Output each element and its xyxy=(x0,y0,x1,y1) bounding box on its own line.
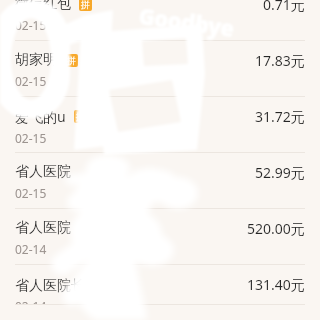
staticText: 02-15 xyxy=(15,185,47,201)
staticText: 省人医院长x xyxy=(15,275,93,294)
button[interactable]: 爱飞的u xyxy=(0,97,320,153)
staticText: 02-15 xyxy=(15,73,47,89)
staticText: 02-14 xyxy=(15,241,47,257)
button[interactable]: 省人医院 xyxy=(0,153,320,209)
button[interactable]: 省人医院 xyxy=(0,209,320,265)
staticText: 02-14 xyxy=(15,298,47,305)
staticText: 省人医院 xyxy=(15,219,71,237)
button[interactable]: 微信红包 xyxy=(0,0,320,41)
staticText: 52.99元 xyxy=(255,163,305,182)
staticText: 131.40元 xyxy=(247,275,305,294)
staticText: 0.71元 xyxy=(263,0,305,14)
staticText: 02-15 xyxy=(15,130,47,146)
staticText: 拼 xyxy=(76,111,85,122)
staticText: Goodbye xyxy=(137,0,236,43)
staticText: 520.00元 xyxy=(247,219,305,238)
staticText: 胡家明 xyxy=(15,51,57,69)
staticText: 微信红包 xyxy=(15,0,71,13)
staticText: 爱飞的u xyxy=(15,107,66,126)
staticText: 17.83元 xyxy=(255,51,305,70)
button[interactable]: 省人医院长x xyxy=(0,265,320,305)
staticText: 省人医院 xyxy=(15,163,71,181)
staticText: 31.72元 xyxy=(255,107,305,126)
button[interactable]: 胡家明 xyxy=(0,41,320,97)
staticText: 02-15 xyxy=(15,17,47,33)
staticText: 拼 xyxy=(81,0,90,10)
staticText: 拼 xyxy=(67,55,76,66)
